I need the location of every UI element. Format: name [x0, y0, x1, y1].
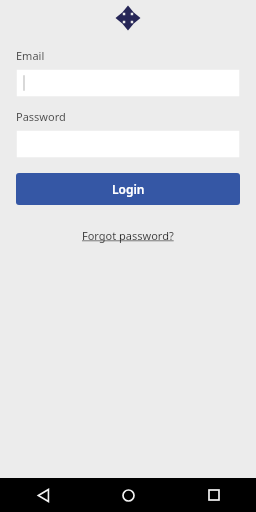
staticText: Forgot password? [82, 228, 174, 243]
staticText: Email [16, 48, 45, 63]
button[interactable] [16, 130, 240, 158]
button[interactable]: Back [0, 478, 86, 512]
button[interactable] [16, 69, 240, 97]
button[interactable]: Recent apps [171, 478, 256, 512]
staticText: Login [112, 181, 145, 197]
other: App logo [115, 5, 141, 31]
staticText: Password [16, 109, 66, 124]
button[interactable]: Forgot password? [76, 226, 180, 245]
button[interactable]: Login [16, 173, 240, 205]
button[interactable]: Home [86, 478, 171, 512]
